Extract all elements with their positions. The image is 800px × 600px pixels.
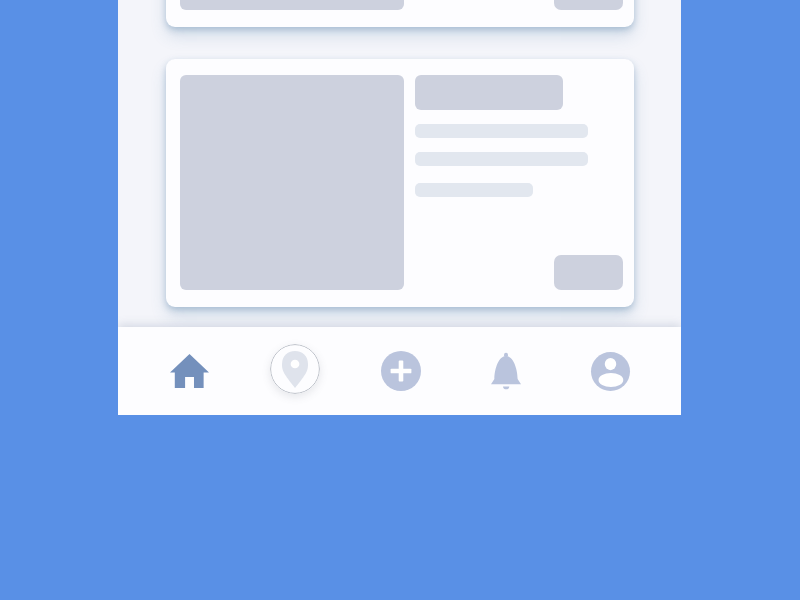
button[interactable]: [166, 59, 634, 307]
button[interactable]: Add: [348, 327, 453, 415]
button[interactable]: Profile: [558, 327, 663, 415]
button[interactable]: [554, 255, 623, 290]
button[interactable]: [554, 0, 623, 10]
button[interactable]: Places: [242, 327, 348, 415]
button[interactable]: Notifications: [453, 327, 558, 415]
button[interactable]: [166, 0, 634, 27]
button[interactable]: [166, 339, 634, 415]
button[interactable]: Home: [136, 327, 242, 415]
